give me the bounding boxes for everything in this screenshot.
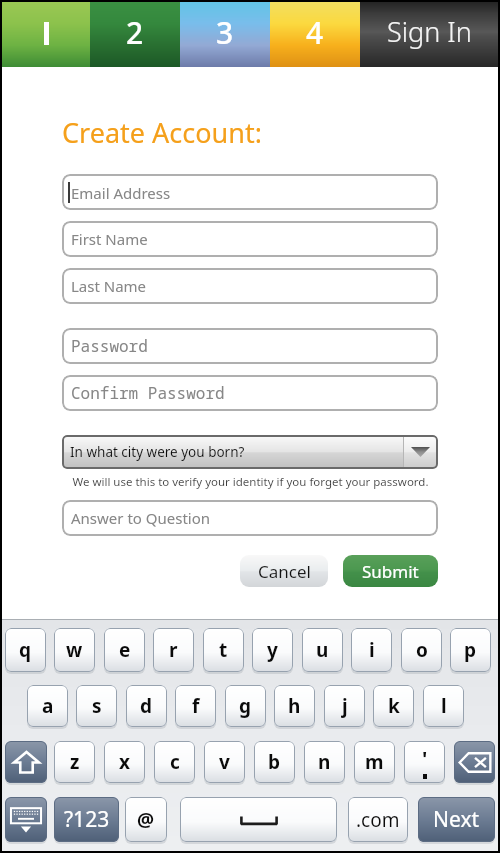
- staticText: l: [441, 693, 447, 719]
- button[interactable]: x: [104, 741, 145, 783]
- button[interactable]: z: [54, 741, 95, 783]
- button[interactable]: p: [450, 628, 491, 672]
- staticText: .com: [356, 807, 400, 833]
- staticText: a: [42, 693, 54, 719]
- staticText: m: [365, 749, 384, 775]
- staticText: j: [342, 693, 348, 719]
- button[interactable]: ?123: [54, 797, 119, 842]
- button[interactable]: s: [76, 685, 117, 727]
- button[interactable]: n: [304, 741, 345, 783]
- staticText: i: [369, 637, 375, 663]
- staticText: 4: [306, 12, 324, 53]
- button[interactable]: 3: [180, 2, 270, 67]
- staticText: q: [19, 637, 32, 663]
- staticText: Last Name: [71, 276, 147, 296]
- button[interactable]: u: [302, 628, 343, 672]
- button[interactable]: a: [27, 685, 68, 727]
- staticText: g: [239, 693, 252, 719]
- button[interactable]: Submit: [343, 555, 438, 587]
- button[interactable]: Shift: [5, 741, 47, 783]
- button[interactable]: e: [104, 628, 145, 672]
- staticText: y: [267, 637, 278, 663]
- staticText: @: [137, 807, 155, 833]
- button[interactable]: Sign In: [360, 2, 498, 67]
- button[interactable]: b: [254, 741, 295, 783]
- staticText: b: [268, 749, 281, 775]
- staticText: f: [192, 693, 200, 719]
- staticText: Create Account:: [62, 114, 262, 151]
- button[interactable]: j: [324, 685, 365, 727]
- button[interactable]: y: [252, 628, 293, 672]
- staticText: Confirm Password: [71, 382, 225, 404]
- staticText: Email Address: [71, 183, 171, 203]
- staticText: 3: [216, 12, 234, 53]
- button[interactable]: r: [153, 628, 194, 672]
- button[interactable]: k: [373, 685, 414, 727]
- staticText: r: [169, 637, 178, 663]
- staticText: We will use this to verify your identity…: [72, 474, 429, 490]
- button[interactable]: v: [204, 741, 245, 783]
- button[interactable]: w: [54, 628, 95, 672]
- staticText: z: [70, 749, 80, 775]
- button[interactable]: g: [225, 685, 266, 727]
- button[interactable]: First Name: [62, 221, 438, 257]
- staticText: Next: [433, 805, 480, 834]
- button[interactable]: [2, 2, 90, 67]
- button[interactable]: c: [154, 741, 195, 783]
- button[interactable]: m: [354, 741, 395, 783]
- button[interactable]: q: [5, 628, 46, 672]
- staticText: Cancel: [258, 560, 311, 583]
- button[interactable]: t: [203, 628, 244, 672]
- button[interactable]: Comma and period: [404, 741, 445, 783]
- button[interactable]: Hide keyboard: [5, 797, 47, 842]
- staticText: x: [119, 749, 130, 775]
- button[interactable]: Next: [418, 797, 495, 842]
- staticText: e: [119, 637, 131, 663]
- staticText: d: [140, 693, 153, 719]
- button[interactable]: i: [351, 628, 392, 672]
- staticText: h: [288, 693, 301, 719]
- button[interactable]: Last Name: [62, 268, 438, 304]
- staticText: v: [219, 749, 230, 775]
- button[interactable]: 4: [270, 2, 360, 67]
- staticText: c: [170, 749, 180, 775]
- button[interactable]: Answer to Question: [62, 500, 438, 536]
- button[interactable]: Backspace: [454, 741, 495, 783]
- staticText: In what city were you born?: [70, 443, 245, 461]
- staticText: s: [92, 693, 102, 719]
- staticText: Password: [71, 335, 148, 357]
- button[interactable]: .com: [348, 797, 408, 842]
- staticText: k: [388, 693, 400, 719]
- button[interactable]: h: [274, 685, 315, 727]
- staticText: 2: [126, 12, 144, 53]
- staticText: Submit: [362, 560, 419, 583]
- button[interactable]: Cancel: [240, 555, 328, 587]
- staticText: u: [316, 637, 329, 663]
- button[interactable]: Space: [180, 797, 337, 842]
- staticText: ?123: [64, 805, 110, 834]
- button[interactable]: Confirm Password: [62, 375, 438, 411]
- button[interactable]: f: [175, 685, 216, 727]
- button[interactable]: d: [126, 685, 167, 727]
- button[interactable]: 2: [90, 2, 180, 67]
- staticText: n: [318, 749, 331, 775]
- button[interactable]: l: [423, 685, 464, 727]
- staticText: p: [464, 637, 477, 663]
- button[interactable]: In what city were you born?: [62, 435, 438, 469]
- staticText: t: [219, 637, 228, 663]
- staticText: o: [416, 637, 428, 663]
- staticText: w: [66, 637, 83, 663]
- staticText: ': [422, 745, 428, 772]
- button[interactable]: Email Address: [62, 174, 438, 210]
- staticText: Answer to Question: [71, 508, 211, 528]
- staticText: Sign In: [387, 13, 472, 50]
- button[interactable]: Password: [62, 328, 438, 364]
- staticText: First Name: [71, 229, 148, 249]
- button[interactable]: @: [125, 797, 167, 842]
- button[interactable]: o: [401, 628, 442, 672]
